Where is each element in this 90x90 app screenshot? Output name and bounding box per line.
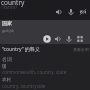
- button[interactable]: “country” 的释义: [0, 45, 90, 54]
- staticText: “country” 的释义: [2, 46, 40, 53]
- button[interactable]: Voice input: [65, 35, 73, 43]
- staticText: 国: [2, 64, 7, 70]
- button[interactable]: Camera: [79, 8, 87, 16]
- staticText: country: [1, 0, 25, 7]
- staticText: commonwealth, country, state: [2, 69, 67, 75]
- button[interactable]: Volume: [54, 35, 62, 43]
- button[interactable]: Expand: [76, 35, 84, 43]
- staticText: 查看全部: [73, 47, 89, 52]
- button[interactable]: Microphone: [67, 8, 75, 16]
- staticText: country, countryside: [2, 83, 46, 89]
- staticText: /ˈkʌntri/: [1, 4, 18, 10]
- button[interactable]: Play: [43, 35, 51, 43]
- staticText: guó jiā: [2, 28, 14, 33]
- staticText: 名词: [2, 56, 12, 62]
- staticText: 农村: [2, 77, 11, 83]
- staticText: 国家: [2, 20, 12, 26]
- button[interactable]: Speaker: [55, 8, 63, 16]
